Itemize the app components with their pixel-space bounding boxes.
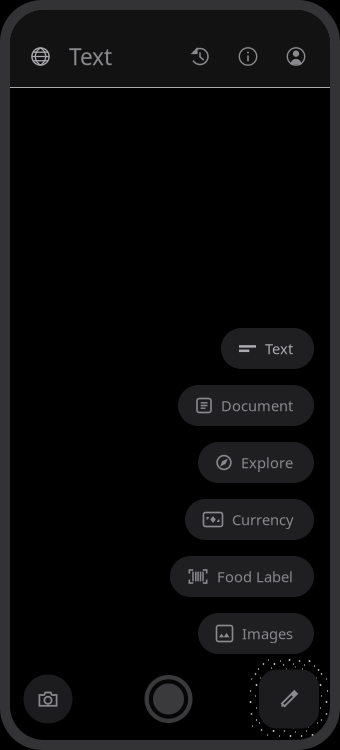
staticText: Food Label: [217, 567, 293, 586]
staticText: Images: [242, 624, 293, 643]
button[interactable]: Write: [259, 669, 319, 729]
button[interactable]: Explore: [198, 442, 314, 483]
button[interactable]: Gallery: [18, 669, 78, 729]
button[interactable]: Info: [224, 25, 272, 88]
button[interactable]: Capture: [138, 669, 198, 729]
button[interactable]: Text: [10, 25, 120, 88]
staticText: Text: [69, 41, 112, 71]
button[interactable]: Document: [178, 385, 314, 426]
button[interactable]: History: [176, 25, 224, 88]
button[interactable]: Currency: [185, 499, 314, 540]
staticText: Text: [265, 339, 293, 358]
button[interactable]: Images: [198, 613, 314, 654]
staticText: Explore: [241, 453, 293, 472]
button[interactable]: Text: [221, 328, 314, 369]
staticText: Document: [221, 396, 293, 415]
button[interactable]: Food Label: [170, 556, 314, 597]
staticText: Currency: [232, 510, 293, 529]
button[interactable]: Account: [272, 25, 320, 88]
